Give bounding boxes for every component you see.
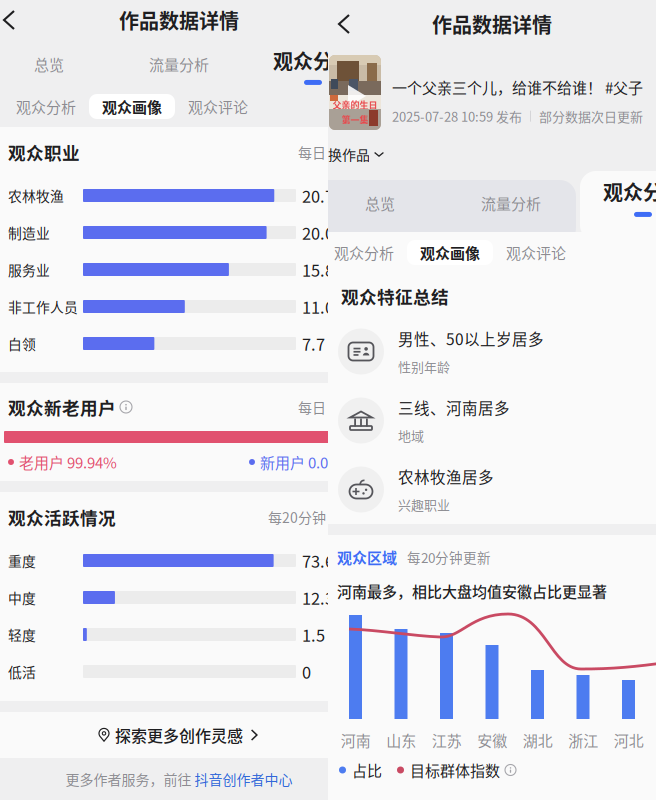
staticText: 第一集 [341, 113, 368, 126]
staticText: 观众评论 [188, 96, 248, 117]
staticText: 占比 [352, 759, 382, 781]
staticText: 安徽 [477, 729, 507, 751]
staticText: 观众分析 [16, 96, 76, 117]
staticText: 轻度 [8, 624, 36, 644]
staticText: 总览 [365, 192, 395, 214]
button[interactable]: 男性、50以上岁居多 [338, 317, 656, 386]
staticText: 探索更多创作灵感 [115, 723, 243, 747]
staticText: 湖北 [523, 729, 553, 751]
staticText: 河南 [341, 729, 371, 751]
staticText: 山东 [386, 729, 416, 751]
button[interactable]: 农林牧渔居多 [338, 455, 656, 524]
staticText: 20.7 [302, 184, 334, 207]
staticText: 观众画像 [420, 242, 480, 263]
button[interactable]: 观众分析 [272, 44, 354, 90]
staticText: 1.5 [302, 623, 325, 646]
button[interactable]: 三线、河南居多 [338, 386, 656, 455]
staticText: 每日 [298, 142, 326, 162]
staticText: 白领 [8, 333, 36, 353]
staticText: 流量分析 [149, 53, 209, 75]
staticText: 非工作人员 [8, 296, 78, 316]
staticText: 制造业 [8, 222, 50, 242]
staticText: 观众职业 [8, 139, 80, 165]
button[interactable]: 返回 [0, 0, 22, 40]
staticText: 12.3 [302, 586, 334, 609]
staticText: 抖音创作者中心 [194, 769, 292, 789]
staticText: 父亲的生日 [332, 98, 377, 111]
staticText: 每20分钟更新 [407, 547, 491, 567]
staticText: 兴趣职业 [398, 495, 450, 514]
staticText: 观众分析 [273, 46, 353, 75]
staticText: 更多作者服务，前往 [65, 769, 194, 789]
button[interactable]: 观众分析 [602, 171, 656, 225]
button[interactable]: 观众评论 [496, 240, 576, 265]
staticText: 服务业 [8, 259, 50, 279]
staticText: 观众区域 [337, 546, 397, 568]
staticText: 观众分析 [603, 177, 656, 206]
button[interactable]: 观众评论 [178, 94, 258, 119]
button[interactable]: 总览 [19, 44, 79, 84]
staticText: 每20分钟 [268, 507, 326, 527]
staticText: 农林牧渔居多 [398, 465, 494, 488]
staticText: 重度 [8, 550, 36, 570]
staticText: 切换作品 [314, 144, 370, 164]
staticText: 2025-07-28 10:59 发布 [392, 107, 522, 125]
staticText: 地域 [398, 426, 424, 445]
button[interactable]: 观众分析 [6, 94, 86, 119]
staticText: 目标群体指数 [410, 759, 500, 781]
staticText: 性别年龄 [398, 357, 450, 376]
staticText: 江苏 [432, 729, 462, 751]
button[interactable]: 抖音创作者中心 [194, 769, 292, 789]
button[interactable]: 流量分析 [139, 44, 219, 84]
button[interactable]: 流量分析 [471, 180, 551, 226]
staticText: 0 [302, 660, 311, 683]
staticText: 作品数据详情 [119, 5, 239, 34]
button[interactable]: 观众画像 [89, 94, 175, 119]
staticText: 观众分析 [334, 242, 394, 263]
staticText: 观众画像 [102, 96, 162, 117]
staticText: 11.0 [302, 295, 334, 318]
staticText: 部分数据次日更新 [539, 107, 643, 125]
staticText: 老用户 99.94% [19, 451, 117, 473]
staticText: 观众活跃情况 [8, 504, 116, 530]
staticText: 河南最多，相比大盘均值安徽占比更显著 [337, 580, 607, 602]
button[interactable]: 探索更多创作灵感 [0, 712, 358, 758]
staticText: 每日 [298, 397, 326, 417]
staticText: 7.7 [302, 332, 325, 355]
button[interactable]: 观众分析 [324, 240, 404, 265]
staticText: 中度 [8, 587, 36, 607]
staticText: 流量分析 [481, 192, 541, 214]
staticText: 15.8 [302, 258, 334, 281]
button[interactable]: 总览 [350, 180, 410, 226]
staticText: 一个父亲三个儿，给谁不给谁！ #父子 [392, 76, 643, 98]
button[interactable]: 切换作品 [314, 138, 384, 170]
staticText: 河北 [614, 729, 644, 751]
staticText: 73.6 [302, 549, 334, 572]
staticText: 浙江 [568, 729, 598, 751]
staticText: 作品数据详情 [432, 9, 552, 38]
staticText: 总览 [34, 53, 64, 75]
button[interactable]: 观众画像 [407, 240, 493, 265]
staticText: 低活 [8, 661, 36, 681]
staticText: 20.0 [302, 221, 334, 244]
staticText: 观众新老用户 [8, 394, 116, 420]
staticText: 男性、50以上岁居多 [398, 327, 544, 350]
staticText: 观众评论 [506, 242, 566, 263]
staticText: 观众特征总结 [341, 283, 449, 309]
staticText: 三线、河南居多 [398, 396, 510, 419]
staticText: 新用户 0.06% [260, 451, 350, 473]
staticText: 农林牧渔 [8, 185, 64, 205]
button[interactable]: 返回 [332, 2, 356, 46]
